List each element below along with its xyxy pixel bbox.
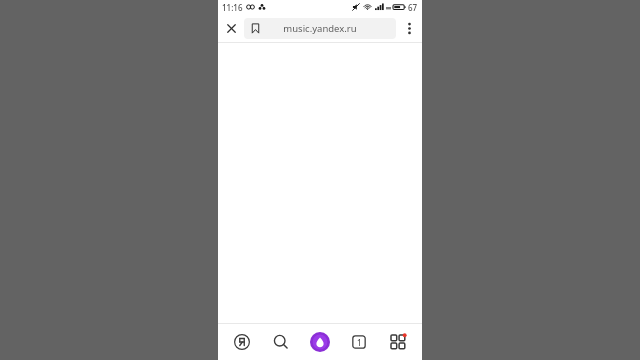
button[interactable]: More options <box>396 14 422 43</box>
staticText: 11:16 <box>222 2 243 13</box>
button[interactable]: Close <box>218 14 244 43</box>
staticText: 1 <box>357 337 362 348</box>
staticText: music.yandex.ru <box>283 22 357 35</box>
button[interactable]: Apps <box>380 324 416 360</box>
button[interactable]: Profile <box>224 324 260 360</box>
button[interactable]: Tabs <box>341 324 377 360</box>
staticText: 67 <box>408 2 418 13</box>
button[interactable]: Search <box>263 324 299 360</box>
button[interactable]: Alice assistant <box>302 324 338 360</box>
button[interactable]: music.yandex.ru <box>244 18 396 39</box>
